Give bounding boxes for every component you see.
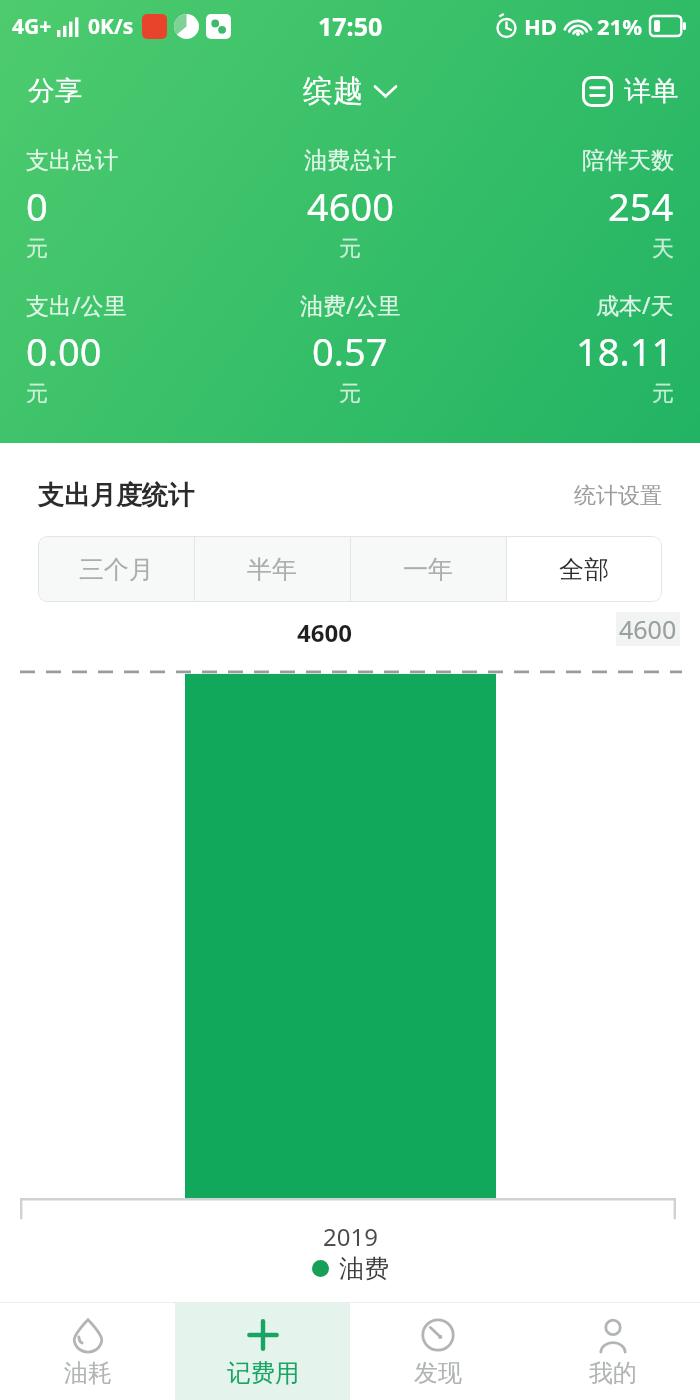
staticText: 天 — [652, 235, 674, 263]
staticText: 21% — [597, 11, 643, 41]
button[interactable]: 统计设置 — [574, 482, 662, 510]
button[interactable]: 三个月 — [38, 536, 194, 602]
staticText: HD — [524, 11, 557, 41]
staticText: 缤越 — [303, 72, 363, 110]
staticText: 0K/s — [88, 12, 134, 41]
staticText: 4600 — [297, 616, 352, 649]
staticText: 4600 — [307, 180, 394, 232]
staticText: 我的 — [589, 1358, 637, 1388]
staticText: 支出月度统计 — [38, 479, 194, 512]
staticText: 254 — [608, 180, 674, 232]
button[interactable]: 分享 — [0, 58, 110, 124]
staticText: 0.57 — [312, 325, 388, 377]
staticText: 0 — [26, 180, 48, 232]
staticText: 三个月 — [79, 554, 154, 585]
staticText: 18.11 — [576, 325, 674, 377]
staticText: 一年 — [403, 554, 453, 585]
staticText: 17:50 — [318, 9, 383, 43]
staticText: 油费 — [339, 1253, 389, 1284]
button[interactable]: 一年 — [350, 536, 506, 602]
button[interactable]: 详单 — [560, 60, 700, 122]
staticText: 0.00 — [26, 325, 102, 377]
button[interactable]: 发现 — [350, 1303, 525, 1400]
button[interactable]: 半年 — [194, 536, 350, 602]
staticText: 成本/天 — [596, 289, 674, 320]
staticText: 元 — [652, 380, 674, 408]
staticText: 发现 — [414, 1358, 462, 1388]
staticText: 元 — [339, 380, 361, 408]
staticText: 2019 — [323, 1220, 378, 1253]
staticText: 油费/公里 — [300, 289, 401, 320]
staticText: 全部 — [559, 554, 609, 585]
staticText: 半年 — [247, 554, 297, 585]
staticText: 油耗 — [64, 1358, 112, 1388]
staticText: 支出总计 — [26, 146, 118, 175]
button[interactable]: 缤越 — [285, 58, 415, 124]
button[interactable]: 记费用 — [175, 1303, 350, 1400]
staticText: 元 — [26, 235, 48, 263]
button[interactable]: 油耗 — [0, 1303, 175, 1400]
staticText: 分享 — [28, 74, 82, 108]
staticText: 4G+ — [12, 12, 52, 41]
staticText: 陪伴天数 — [582, 146, 674, 175]
button[interactable]: 全部 — [506, 536, 662, 602]
staticText: 元 — [26, 380, 48, 408]
staticText: 记费用 — [227, 1358, 299, 1388]
staticText: 元 — [339, 235, 361, 263]
staticText: 4600 — [619, 612, 677, 646]
staticText: 油费总计 — [304, 146, 396, 175]
staticText: 支出/公里 — [26, 289, 127, 320]
staticText: 统计设置 — [574, 482, 662, 510]
staticText: 详单 — [624, 74, 678, 108]
button[interactable]: 我的 — [525, 1303, 700, 1400]
